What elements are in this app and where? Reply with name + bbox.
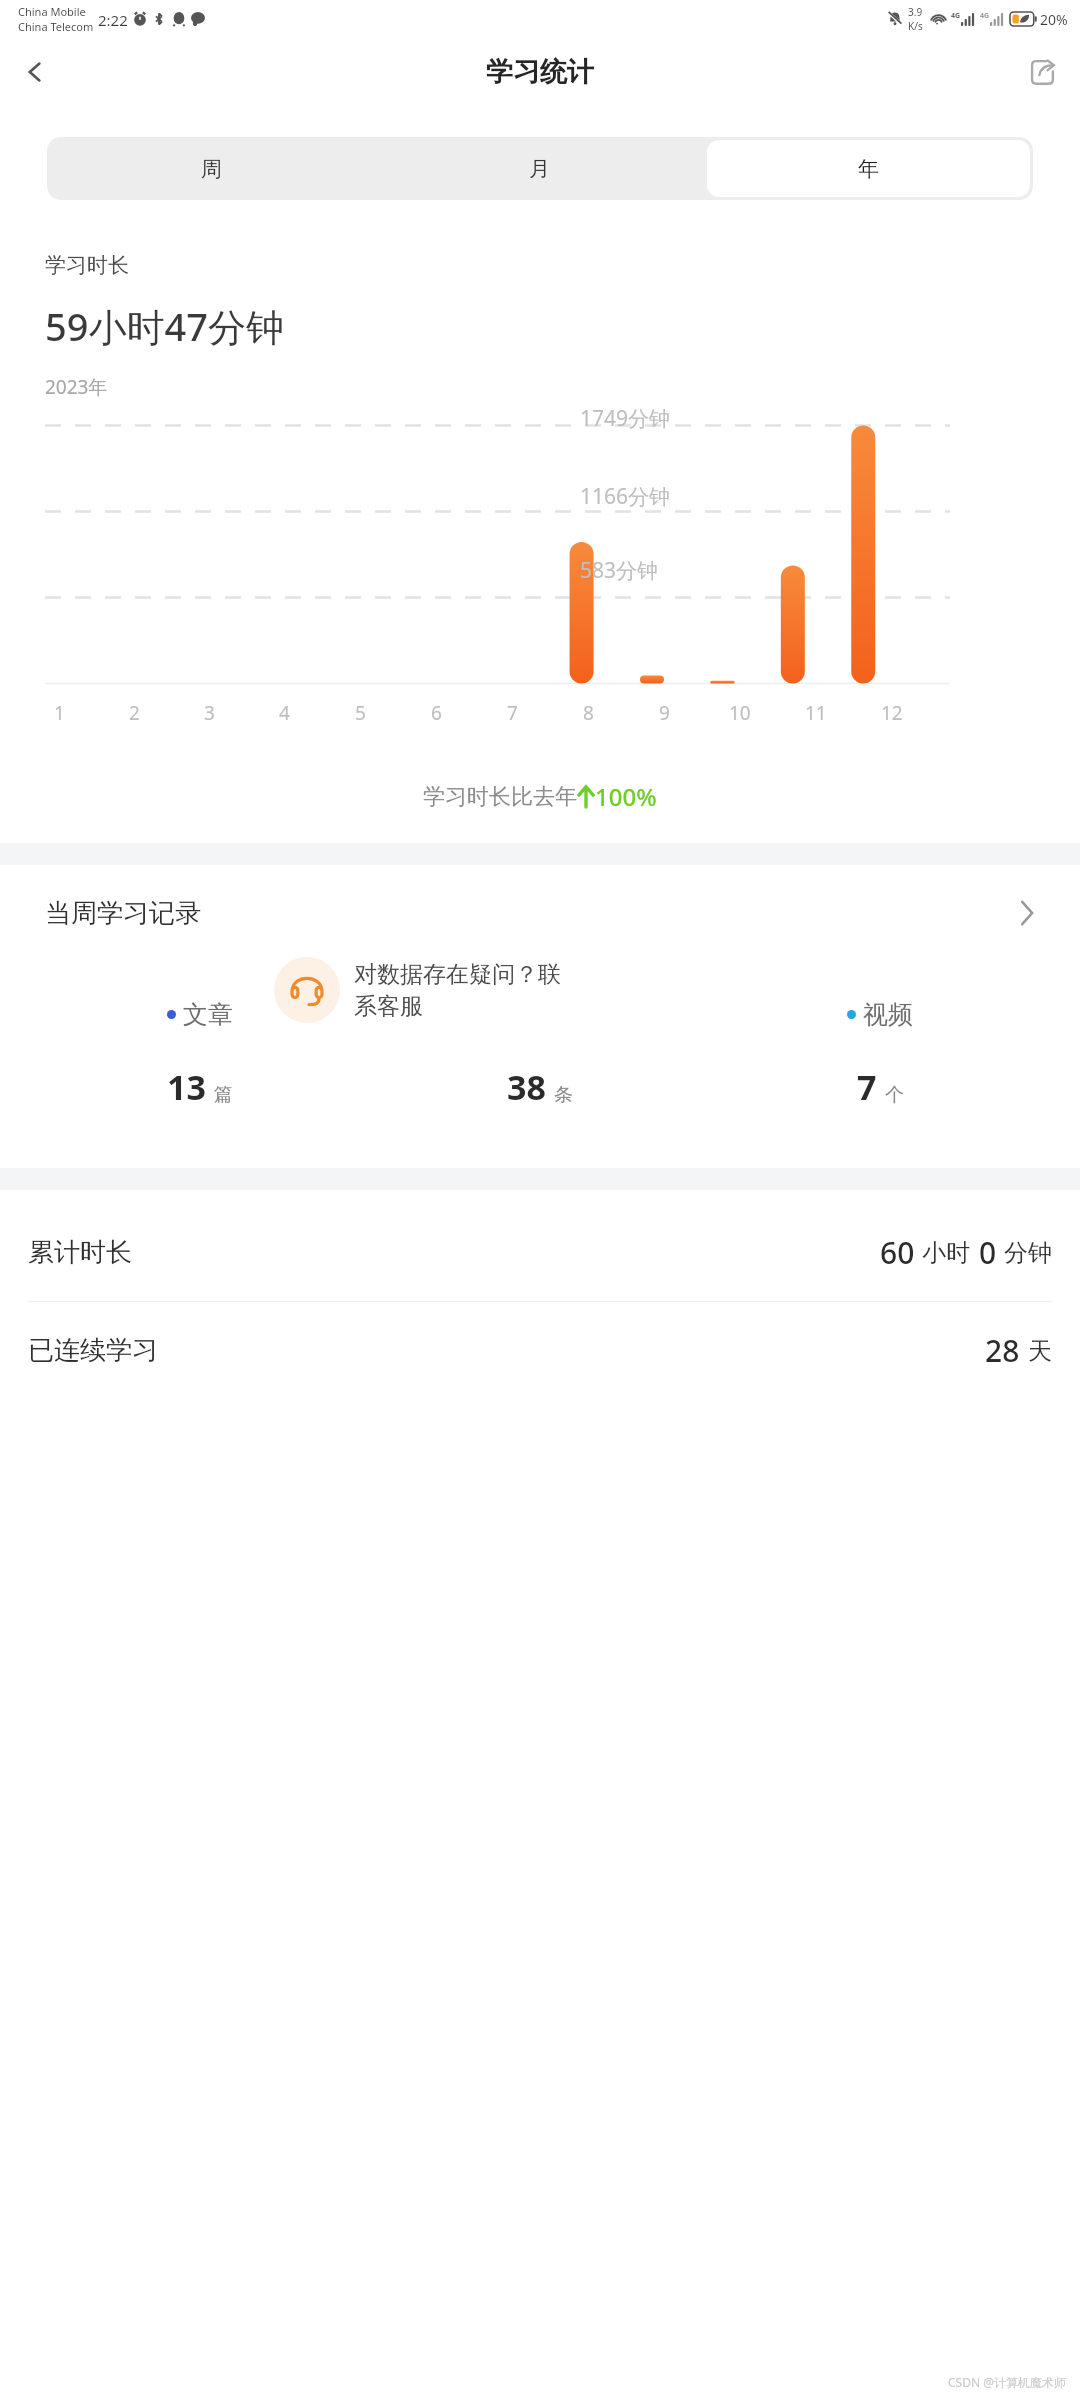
staticText: 1749分钟 — [580, 404, 671, 433]
staticText: 2023年 — [45, 374, 108, 400]
staticText: 篇 — [214, 1083, 233, 1107]
staticText: 100% — [595, 780, 657, 813]
staticText: 1166分钟 — [580, 482, 671, 511]
staticText: 6 — [431, 700, 442, 726]
staticText: 3.9 — [908, 5, 923, 19]
button[interactable]: 周 — [50, 140, 372, 197]
staticText: 4G — [980, 11, 990, 21]
button[interactable]: 当周学习记录 — [0, 865, 1080, 961]
staticText: 累计时长 — [28, 1236, 132, 1269]
staticText: 2:22 — [98, 10, 128, 30]
button[interactable]: Back — [8, 45, 62, 99]
staticText: 2 — [129, 700, 140, 726]
button[interactable]: Share — [1016, 45, 1070, 99]
staticText: 视频 — [863, 999, 913, 1030]
staticText: K/s — [908, 19, 923, 33]
staticText: 7 — [857, 1064, 877, 1110]
staticText: 20% — [1040, 10, 1068, 29]
staticText: China Mobile — [18, 4, 86, 19]
staticText: 文章 — [183, 999, 233, 1030]
staticText: 8 — [583, 700, 594, 726]
staticText: 年 — [858, 156, 879, 182]
button[interactable]: 对数据存在疑问？联系客服 — [260, 942, 590, 1038]
staticText: 11 — [805, 700, 827, 726]
staticText: 学习统计 — [486, 55, 594, 89]
staticText: 4 — [279, 700, 290, 726]
staticText: 583分钟 — [580, 556, 659, 585]
staticText: 个 — [885, 1083, 904, 1107]
staticText: 分钟 — [1004, 1238, 1052, 1268]
staticText: 1 — [54, 700, 65, 726]
staticText: 已连续学习 — [28, 1334, 158, 1367]
staticText: 60 — [880, 1232, 915, 1273]
staticText: 7 — [507, 700, 518, 726]
staticText: 对数据存在疑问？联系客服 — [354, 960, 580, 1021]
staticText: 学习时长 — [45, 252, 129, 278]
staticText: China Telecom — [18, 19, 94, 34]
staticText: 3 — [204, 700, 215, 726]
staticText: 12 — [881, 700, 903, 726]
staticText: 学习时长比去年 — [423, 783, 577, 811]
staticText: 59小时47分钟 — [45, 300, 284, 352]
staticText: 当周学习记录 — [45, 897, 201, 930]
staticText: 13 — [167, 1064, 206, 1110]
staticText: 10 — [729, 700, 751, 726]
button[interactable]: 年 — [707, 140, 1030, 197]
staticText: CSDN @计算机魔术师 — [948, 2374, 1066, 2390]
staticText: 0 — [979, 1232, 997, 1273]
staticText: 4G — [951, 11, 961, 21]
staticText: 月 — [529, 156, 550, 182]
staticText: 9 — [659, 700, 670, 726]
staticText: 38 — [507, 1064, 546, 1110]
staticText: 5 — [355, 700, 366, 726]
staticText: 28 — [985, 1330, 1020, 1371]
staticText: 天 — [1028, 1336, 1052, 1366]
staticText: 周 — [201, 156, 222, 182]
staticText: 条 — [554, 1083, 573, 1107]
button[interactable]: 月 — [378, 140, 701, 197]
staticText: 小时 — [922, 1238, 970, 1268]
